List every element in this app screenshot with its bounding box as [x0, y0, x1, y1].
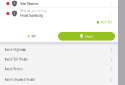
button[interactable]: Avoid Ferries	[0, 64, 118, 74]
staticText: Avoid Ferries	[4, 67, 22, 71]
staticText: Avoid Toll Roads	[4, 58, 27, 61]
button[interactable]: What are you doing	[0, 8, 118, 19]
button[interactable]: Save	[26, 33, 38, 39]
staticText: Site Name	[20, 1, 38, 6]
staticText: Save	[31, 34, 36, 38]
staticText: Start	[85, 34, 93, 39]
button[interactable]: Start	[58, 32, 115, 41]
staticText: What are you doing	[20, 9, 47, 13]
button[interactable]: Avoid Highways	[0, 45, 118, 54]
staticText: Avoid Highways	[4, 48, 25, 51]
staticText: Add Site	[100, 20, 112, 24]
button[interactable]: Avoid Toll Roads	[0, 55, 118, 64]
staticText: Avoid Unpaved Roads	[4, 78, 34, 81]
staticText: Hoat Santicity	[20, 13, 43, 18]
button[interactable]: Add Site	[95, 20, 114, 25]
button[interactable]: Avoid Unpaved Roads	[0, 74, 118, 85]
button[interactable]: Site Name	[0, 0, 118, 7]
